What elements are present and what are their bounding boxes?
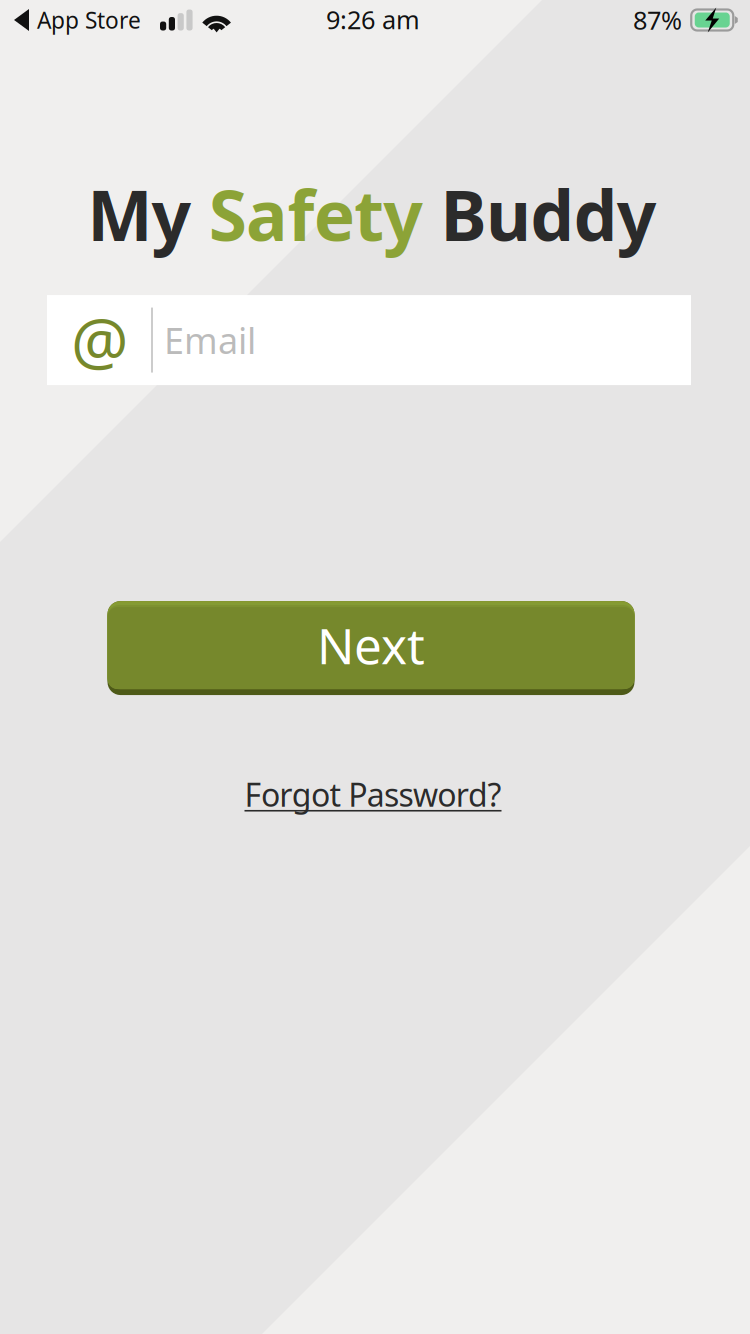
staticText: Email xyxy=(164,316,256,364)
staticText: Buddy xyxy=(423,168,657,260)
button[interactable]: Forgot Password? xyxy=(244,773,501,816)
staticText: Next xyxy=(317,612,425,678)
staticText: Safety xyxy=(209,168,423,260)
staticText: 9:26 am xyxy=(326,3,420,36)
staticText: My xyxy=(87,168,209,260)
button[interactable]: Next xyxy=(107,601,634,695)
staticText: 87% xyxy=(633,3,682,37)
staticText: App Store xyxy=(37,5,141,35)
staticText: @ xyxy=(71,298,129,383)
staticText: Forgot Password? xyxy=(244,773,501,816)
button[interactable]: Back to App Store xyxy=(14,5,141,35)
button[interactable]: @ xyxy=(47,295,691,385)
